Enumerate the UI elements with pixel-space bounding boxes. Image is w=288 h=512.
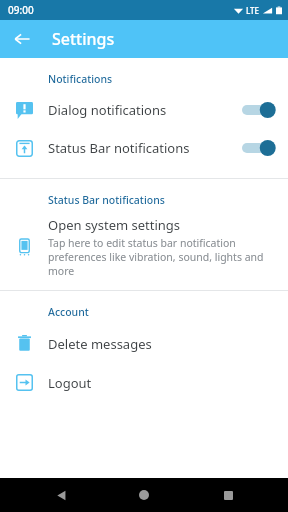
button[interactable]: Back xyxy=(38,478,84,512)
staticText: Logout xyxy=(48,374,288,392)
button[interactable]: Status Bar notifications xyxy=(0,129,288,167)
staticText: Notifications xyxy=(48,72,113,86)
staticText: Open system settings xyxy=(48,216,181,234)
button[interactable]: Recent apps xyxy=(205,478,251,512)
staticText: Tap here to edit status bar notification… xyxy=(48,236,280,278)
staticText: Dialog notifications xyxy=(48,101,242,119)
button[interactable]: Home xyxy=(121,478,167,512)
staticText: Account xyxy=(48,305,89,319)
staticText: Status Bar notifications xyxy=(48,193,165,207)
button[interactable]: Delete messages xyxy=(0,324,288,363)
staticText: Status Bar notifications xyxy=(48,139,242,157)
staticText: 09:00 xyxy=(8,3,34,17)
button[interactable]: Open system settings xyxy=(0,212,288,282)
button[interactable]: Logout xyxy=(0,363,288,402)
staticText: Settings xyxy=(52,28,115,50)
staticText: Delete messages xyxy=(48,335,288,353)
staticText: LTE xyxy=(246,5,260,16)
button[interactable]: Dialog notifications xyxy=(0,91,288,129)
button[interactable]: Back xyxy=(6,23,38,55)
